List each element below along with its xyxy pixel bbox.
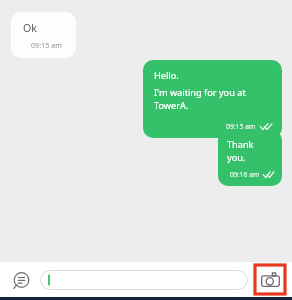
button[interactable]: Hello. — [143, 60, 282, 138]
staticText: I'm waiting for you at TowerA. — [154, 86, 272, 112]
button[interactable] — [40, 270, 248, 290]
staticText: Thank you. — [227, 138, 274, 164]
staticText: Ok — [23, 21, 37, 35]
button[interactable]: Ok — [11, 12, 76, 58]
staticText: 09:16 am — [230, 170, 260, 179]
button[interactable]: Thank you. — [218, 130, 282, 186]
staticText: 09:15 am — [226, 122, 256, 131]
button[interactable]: Camera — [254, 264, 286, 295]
button[interactable]: Stickers — [8, 267, 34, 293]
staticText: 09:15 am — [31, 40, 62, 50]
staticText: Hello. — [154, 69, 179, 82]
